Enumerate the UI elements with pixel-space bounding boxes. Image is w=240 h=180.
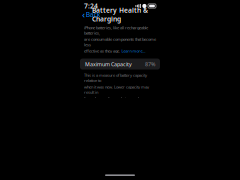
staticText: are consumable components that become le… (84, 37, 156, 47)
staticText: Maximum Capacity (85, 60, 132, 68)
staticText: 87% (145, 60, 155, 68)
staticText: iPhone batteries, like all rechargeable … (84, 25, 148, 36)
staticText: 7:24 (84, 2, 98, 10)
button[interactable]: Learn more... (121, 48, 145, 53)
staticText: This is a measure of battery capacity re… (84, 73, 147, 83)
staticText: when it was new. Lower capacity may resu… (84, 84, 149, 95)
staticText: Learn more... (121, 48, 145, 53)
staticText: Battery Health & Charging (92, 6, 148, 23)
staticText: effective as they age. (84, 48, 120, 53)
staticText: ‹ (82, 8, 85, 21)
staticText: fewer hours of usage between charges. (84, 96, 151, 101)
staticText: Optimized Battery Charging (85, 166, 129, 180)
staticText: Back (86, 10, 101, 19)
button[interactable]: ‹ (79, 6, 104, 23)
